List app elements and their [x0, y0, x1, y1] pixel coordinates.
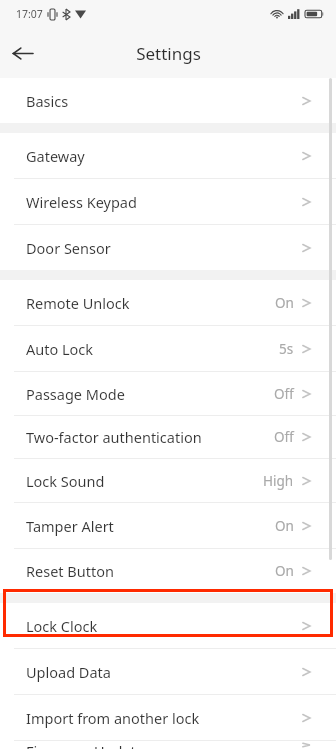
staticText: Gateway: [26, 146, 85, 166]
button[interactable]: Basics: [0, 78, 336, 123]
staticText: Two-factor authentication: [26, 427, 202, 447]
button[interactable]: Two-factor authentication: [0, 416, 336, 458]
staticText: Door Sensor: [26, 238, 111, 258]
staticText: Import from another lock: [26, 708, 200, 728]
button[interactable]: Lock Clock: [0, 603, 336, 648]
button[interactable]: Gateway: [0, 133, 336, 178]
button[interactable]: Lock Sound: [0, 459, 336, 502]
staticText: 5s: [279, 340, 294, 358]
staticText: Upload Data: [26, 662, 111, 682]
button[interactable]: Door Sensor: [0, 225, 336, 270]
staticText: Lock Sound: [26, 471, 105, 491]
staticText: Tamper Alert: [26, 516, 114, 536]
button[interactable]: Passage Mode: [0, 372, 336, 415]
staticText: Off: [274, 428, 294, 446]
staticText: Lock Clock: [26, 616, 98, 636]
staticText: On: [275, 294, 294, 312]
staticText: High: [263, 472, 294, 490]
staticText: Off: [274, 385, 294, 403]
staticText: Remote Unlock: [26, 293, 130, 313]
button[interactable]: Auto Lock: [0, 326, 336, 371]
button[interactable]: Wireless Keypad: [0, 179, 336, 224]
button[interactable]: Tamper Alert: [0, 503, 336, 548]
staticText: Passage Mode: [26, 384, 125, 404]
staticText: On: [275, 562, 294, 580]
button[interactable]: Import from another lock: [0, 695, 336, 740]
button[interactable]: Remote Unlock: [0, 280, 336, 325]
staticText: On: [275, 517, 294, 535]
button[interactable]: Firmware Update: [0, 741, 336, 749]
staticText: Basics: [26, 91, 69, 111]
staticText: Settings: [136, 42, 201, 65]
staticText: Auto Lock: [26, 339, 94, 359]
staticText: Wireless Keypad: [26, 192, 137, 212]
staticText: 17:07: [16, 7, 43, 21]
button[interactable]: Back: [0, 31, 44, 75]
staticText: Firmware Update: [26, 741, 144, 749]
staticText: Reset Button: [26, 561, 114, 581]
button[interactable]: Reset Button: [0, 549, 336, 593]
button[interactable]: Upload Data: [0, 649, 336, 694]
